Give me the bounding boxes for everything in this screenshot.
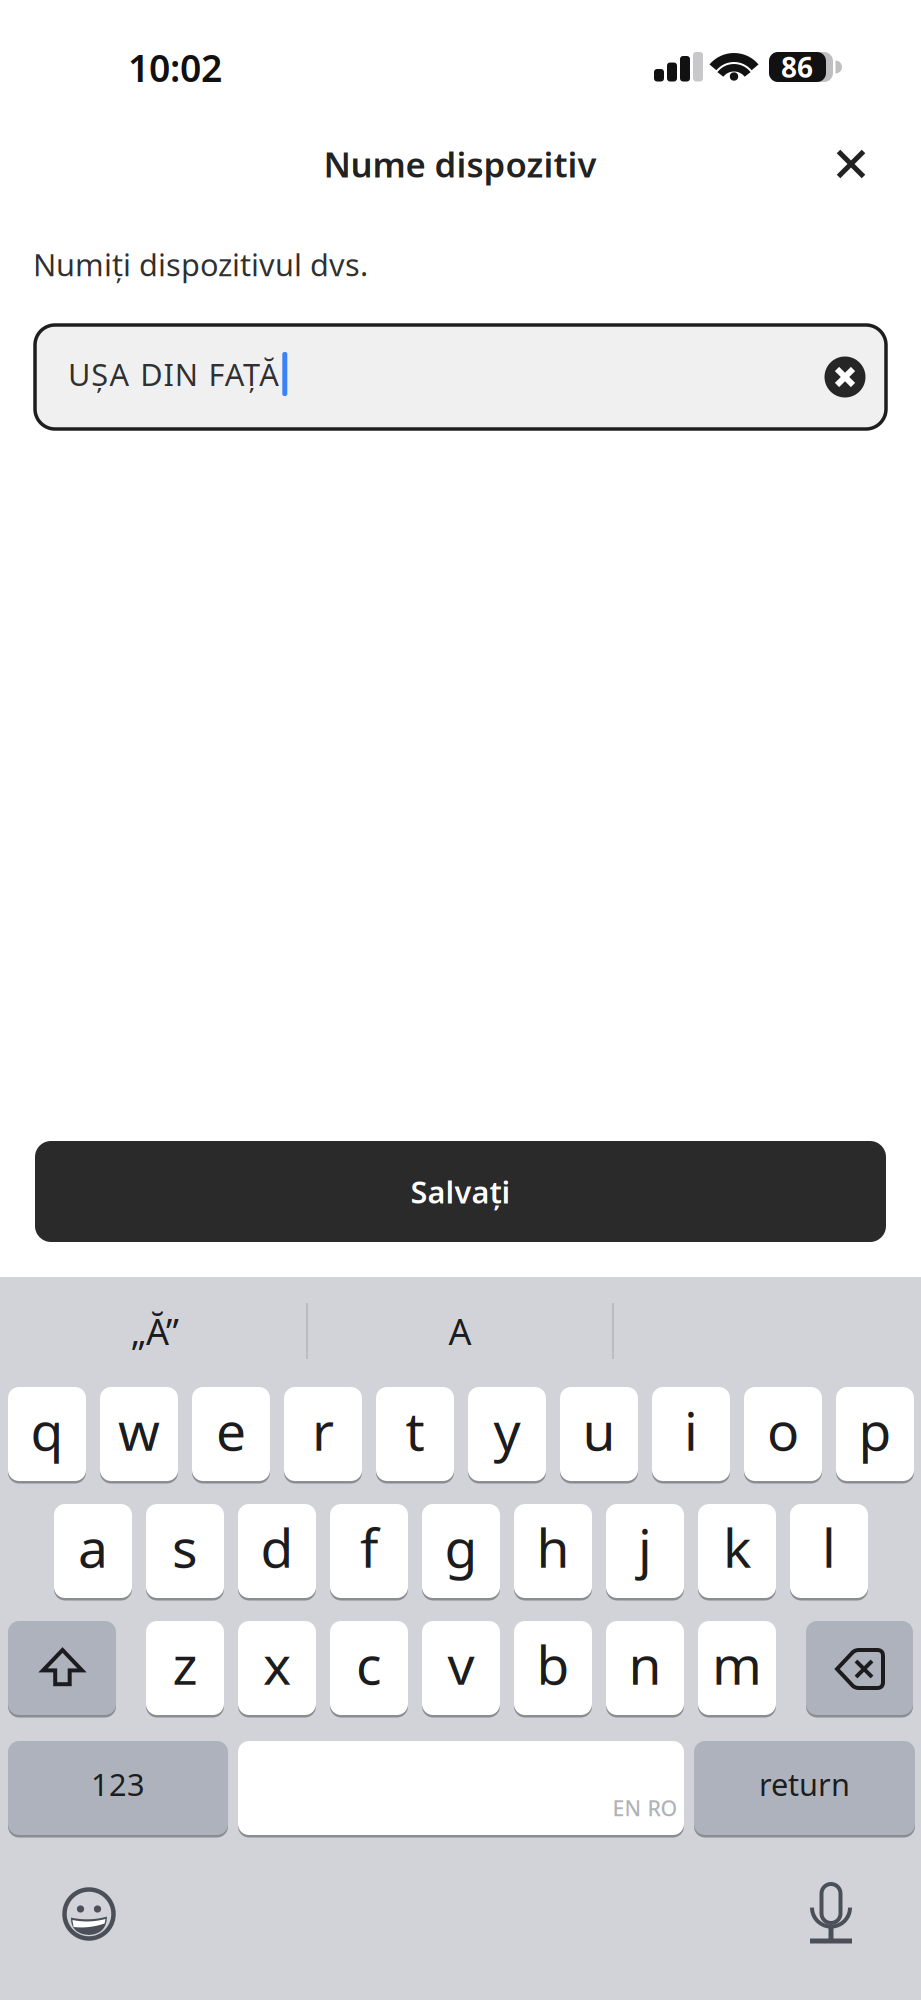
button[interactable]: t <box>376 1386 454 1482</box>
button[interactable]: z <box>146 1620 224 1716</box>
button[interactable]: Emoji <box>59 1884 119 1944</box>
button[interactable]: m <box>698 1620 776 1716</box>
button[interactable]: l <box>790 1503 868 1599</box>
button[interactable]: u <box>560 1386 638 1482</box>
staticText: Numiți dispozitivul dvs. <box>33 244 368 285</box>
button[interactable]: i <box>652 1386 730 1482</box>
staticText: „Ă” <box>131 1307 179 1355</box>
button[interactable]: j <box>606 1503 684 1599</box>
staticText: c <box>356 1629 382 1699</box>
staticText: e <box>216 1395 246 1465</box>
staticText: a <box>78 1512 108 1582</box>
button[interactable]: Space <box>238 1740 684 1836</box>
staticText: A <box>448 1307 471 1355</box>
staticText: b <box>536 1629 569 1699</box>
button[interactable]: Close <box>829 142 873 186</box>
staticText: r <box>312 1395 334 1465</box>
button[interactable]: e <box>192 1386 270 1482</box>
button[interactable]: 123 <box>8 1740 228 1836</box>
button[interactable]: n <box>606 1620 684 1716</box>
staticText: 86 <box>781 48 813 86</box>
button[interactable]: Delete <box>806 1620 913 1716</box>
staticText: q <box>30 1395 63 1465</box>
button[interactable]: y <box>468 1386 546 1482</box>
staticText: return <box>759 1764 850 1804</box>
button[interactable]: Clear text <box>824 356 865 397</box>
button[interactable]: f <box>330 1503 408 1599</box>
button[interactable]: A <box>320 1291 600 1371</box>
staticText: n <box>628 1629 661 1699</box>
staticText: 123 <box>91 1764 145 1804</box>
button[interactable]: return <box>694 1740 915 1836</box>
staticText: v <box>447 1629 474 1699</box>
button[interactable]: c <box>330 1620 408 1716</box>
staticText: g <box>444 1512 477 1582</box>
button[interactable]: k <box>698 1503 776 1599</box>
staticText: EN RO <box>612 1794 677 1822</box>
button[interactable]: r <box>284 1386 362 1482</box>
staticText: h <box>536 1512 569 1582</box>
button[interactable]: Dictation <box>801 1884 861 1944</box>
button[interactable]: „Ă” <box>15 1291 295 1371</box>
button[interactable]: o <box>744 1386 822 1482</box>
staticText: t <box>405 1395 424 1465</box>
button[interactable]: p <box>836 1386 914 1482</box>
button[interactable]: b <box>514 1620 592 1716</box>
staticText: s <box>172 1512 198 1582</box>
staticText: i <box>684 1395 698 1465</box>
button[interactable]: a <box>54 1503 132 1599</box>
staticText: p <box>858 1395 891 1465</box>
staticText: Nume dispozitiv <box>323 141 596 187</box>
button[interactable]: Salvați <box>35 1141 886 1242</box>
button[interactable]: Shift <box>8 1620 116 1716</box>
staticText: UȘA DIN FAȚĂ <box>68 354 279 394</box>
staticText: u <box>582 1395 615 1465</box>
button[interactable]: q <box>8 1386 86 1482</box>
staticText: m <box>712 1629 762 1699</box>
staticText: l <box>822 1512 836 1582</box>
staticText: j <box>638 1512 652 1582</box>
button[interactable]: x <box>238 1620 316 1716</box>
staticText: Salvați <box>410 1171 510 1212</box>
staticText: 10:02 <box>128 43 222 92</box>
staticText: f <box>360 1512 378 1582</box>
staticText: x <box>263 1629 291 1699</box>
button[interactable]: w <box>100 1386 178 1482</box>
button[interactable]: v <box>422 1620 500 1716</box>
staticText: y <box>493 1395 520 1465</box>
staticText: o <box>767 1395 799 1465</box>
button[interactable]: s <box>146 1503 224 1599</box>
button[interactable]: d <box>238 1503 316 1599</box>
button[interactable]: h <box>514 1503 592 1599</box>
staticText: d <box>260 1512 293 1582</box>
staticText: k <box>723 1512 751 1582</box>
button[interactable]: g <box>422 1503 500 1599</box>
staticText: w <box>118 1395 160 1465</box>
staticText: z <box>172 1629 197 1699</box>
